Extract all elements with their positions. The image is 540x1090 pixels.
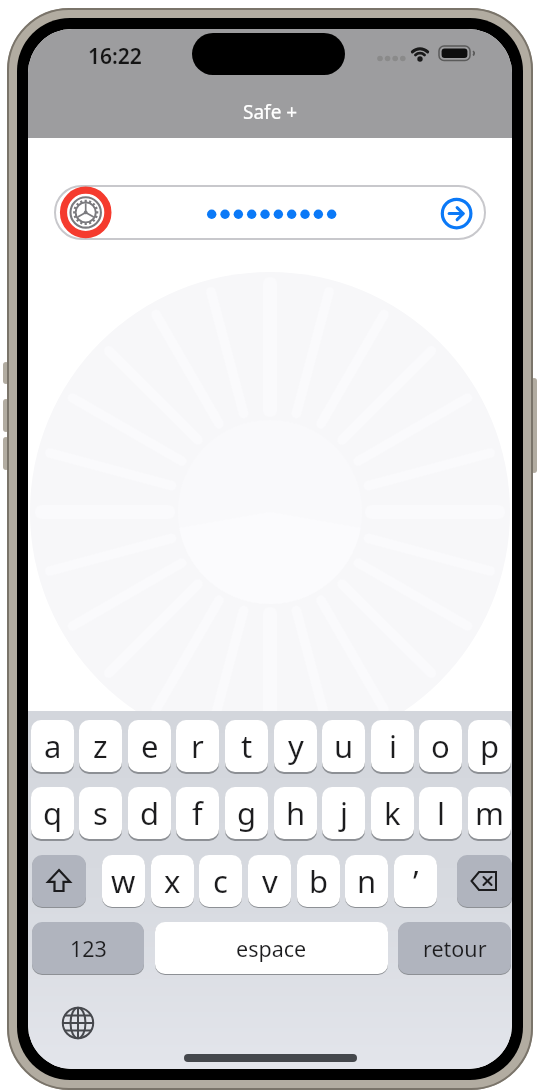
staticText: v (262, 860, 278, 902)
button[interactable]: y (274, 720, 317, 772)
staticText: u (334, 725, 354, 767)
button[interactable]: h (274, 787, 317, 839)
button[interactable]: t (225, 720, 268, 772)
staticText: n (357, 860, 377, 902)
button[interactable]: l (419, 787, 462, 839)
button[interactable]: e (128, 720, 171, 772)
button[interactable]: s (79, 787, 122, 839)
button[interactable]: q (31, 787, 74, 839)
button[interactable] (457, 855, 512, 907)
staticText: l (437, 792, 445, 834)
staticText: k (384, 792, 401, 834)
button[interactable]: z (79, 720, 122, 772)
staticText: z (93, 725, 108, 767)
staticText: s (93, 792, 108, 834)
staticText: w (111, 860, 136, 902)
staticText: y (288, 725, 304, 767)
button[interactable] (32, 855, 86, 907)
staticText: g (237, 792, 257, 834)
button[interactable]: f (176, 787, 219, 839)
staticText: t (241, 725, 253, 767)
staticText: i (389, 725, 397, 767)
button[interactable]: d (128, 787, 171, 839)
staticText: espace (236, 934, 307, 963)
button[interactable]: c (199, 855, 242, 907)
staticText: 16:22 (88, 42, 142, 71)
button[interactable]: p (468, 720, 511, 772)
staticText: ’ (413, 860, 419, 902)
button[interactable]: g (225, 787, 268, 839)
button[interactable]: retour (398, 922, 511, 974)
staticText: 123 (70, 934, 107, 963)
button[interactable]: ’ (394, 855, 437, 907)
staticText: retour (423, 934, 487, 963)
button[interactable]: k (371, 787, 414, 839)
button[interactable]: m (468, 787, 511, 839)
staticText: c (213, 860, 228, 902)
staticText: h (286, 792, 306, 834)
button[interactable] (54, 185, 486, 240)
button[interactable]: w (102, 855, 145, 907)
staticText: x (164, 860, 181, 902)
button[interactable]: o (419, 720, 462, 772)
button[interactable]: j (322, 787, 365, 839)
button[interactable]: v (248, 855, 291, 907)
button[interactable]: 123 (32, 922, 144, 974)
staticText: p (480, 725, 500, 767)
staticText: m (475, 792, 504, 834)
button[interactable]: a (31, 720, 74, 772)
button[interactable] (60, 1005, 96, 1041)
staticText: q (43, 792, 63, 834)
button[interactable]: u (322, 720, 365, 772)
button[interactable]: b (297, 855, 340, 907)
button[interactable]: n (345, 855, 388, 907)
button[interactable]: espace (155, 922, 388, 974)
staticText: a (44, 725, 62, 767)
staticText: f (192, 792, 203, 834)
staticText: b (309, 860, 329, 902)
staticText: r (191, 725, 204, 767)
staticText: o (431, 725, 450, 767)
staticText: j (340, 792, 348, 834)
button[interactable]: x (151, 855, 194, 907)
button[interactable]: r (176, 720, 219, 772)
button[interactable]: i (371, 720, 414, 772)
staticText: e (141, 725, 159, 767)
staticText: d (140, 792, 160, 834)
staticText: Safe + (243, 99, 298, 125)
